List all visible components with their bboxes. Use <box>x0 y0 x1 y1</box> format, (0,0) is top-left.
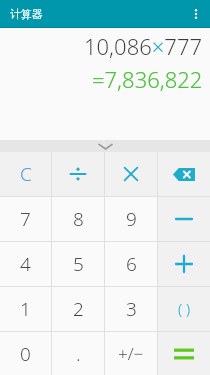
staticText: C <box>20 161 32 187</box>
button[interactable]: 2 <box>52 287 104 331</box>
button[interactable]: 10,086×777 <box>0 28 210 140</box>
staticText: 5 <box>73 251 84 277</box>
staticText: 3 <box>126 296 137 322</box>
button[interactable]: Backspace <box>158 152 210 196</box>
staticText: 8 <box>73 206 84 232</box>
staticText: . <box>76 341 81 367</box>
button[interactable]: 0 <box>0 332 51 375</box>
staticText: ( ) <box>178 299 191 319</box>
button[interactable]: 1 <box>0 287 51 331</box>
button[interactable]: C <box>0 152 51 196</box>
staticText: 0 <box>20 341 31 367</box>
staticText: 7 <box>20 206 31 232</box>
button[interactable]: 6 <box>105 242 157 286</box>
staticText: =7,836,822 <box>92 64 203 94</box>
button[interactable]: . <box>52 332 104 375</box>
button[interactable]: 4 <box>0 242 51 286</box>
button[interactable]: 5 <box>52 242 104 286</box>
button[interactable]: +/− <box>105 332 157 375</box>
button[interactable]: Expand history <box>0 140 210 152</box>
staticText: 6 <box>126 251 137 277</box>
button[interactable]: Multiply <box>105 152 157 196</box>
button[interactable]: 3 <box>105 287 157 331</box>
button[interactable]: 7 <box>0 197 51 241</box>
staticText: 计算器 <box>10 7 43 21</box>
button[interactable]: More options <box>182 0 210 28</box>
staticText: 9 <box>126 206 137 232</box>
staticText: 1 <box>20 296 31 322</box>
button[interactable]: Divide <box>52 152 104 196</box>
button[interactable]: 9 <box>105 197 157 241</box>
staticText: 2 <box>73 296 84 322</box>
staticText: +/− <box>118 342 144 365</box>
button[interactable]: ( ) <box>158 287 210 331</box>
button[interactable]: 8 <box>52 197 104 241</box>
button[interactable]: Plus <box>158 242 210 286</box>
button[interactable]: Equals <box>158 332 210 375</box>
staticText: 4 <box>20 251 31 277</box>
staticText: 10,086×777 <box>84 31 203 61</box>
button[interactable]: Minus <box>158 197 210 241</box>
